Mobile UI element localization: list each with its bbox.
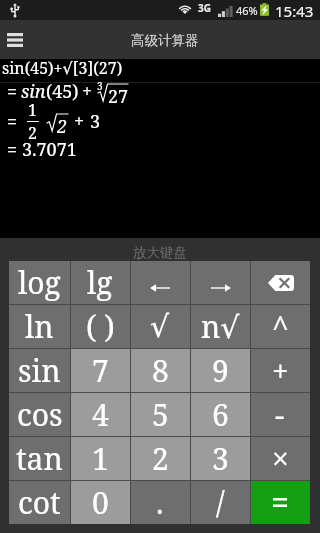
staticText: 27 xyxy=(108,84,129,108)
staticText: log xyxy=(18,262,61,303)
staticText: 1 xyxy=(92,438,109,479)
staticText: × xyxy=(272,438,289,479)
staticText: sin xyxy=(21,79,46,104)
staticText: 高级计算器 xyxy=(131,32,199,49)
staticText: sin(45)+√[3](27) xyxy=(2,57,123,79)
staticText: = xyxy=(7,137,18,162)
staticText: + xyxy=(272,350,289,391)
staticText: n√ xyxy=(201,306,240,347)
button[interactable]: 7 xyxy=(70,348,130,392)
staticText: 46% xyxy=(236,3,258,18)
staticText: 7 xyxy=(92,350,109,391)
button[interactable]: ^ xyxy=(250,304,310,348)
staticText: (45) xyxy=(46,79,79,104)
button[interactable]: log xyxy=(9,261,70,304)
staticText: . xyxy=(156,482,164,523)
staticText: + xyxy=(74,109,85,134)
staticText: 3 xyxy=(90,109,101,134)
button[interactable]: . xyxy=(130,480,190,524)
button[interactable]: cot xyxy=(9,480,70,524)
staticText: ln xyxy=(25,306,54,347)
button[interactable]: 1 xyxy=(70,436,130,480)
button[interactable]: - xyxy=(250,392,310,436)
button[interactable]: sin xyxy=(9,348,70,392)
staticText: 4 xyxy=(92,394,109,435)
staticText: - xyxy=(275,394,285,435)
staticText: = xyxy=(7,109,18,134)
button[interactable]: 5 xyxy=(130,392,190,436)
button[interactable]: 0 xyxy=(70,480,130,524)
staticText: 9 xyxy=(212,350,229,391)
staticText: 0 xyxy=(92,482,109,523)
staticText: cos xyxy=(17,394,63,435)
button[interactable]: Move cursor right xyxy=(190,261,250,304)
button[interactable]: 6 xyxy=(190,392,250,436)
staticText: 8 xyxy=(152,350,169,391)
staticText: 2 xyxy=(57,114,68,138)
staticText: 3 xyxy=(212,438,229,479)
button[interactable]: ln xyxy=(9,304,70,348)
staticText: lg xyxy=(87,262,113,303)
button[interactable]: 8 xyxy=(130,348,190,392)
button[interactable]: ( ) xyxy=(70,304,130,348)
staticText: 3.7071 xyxy=(22,137,77,162)
staticText: 6 xyxy=(212,394,229,435)
staticText: ( ) xyxy=(86,306,115,347)
button[interactable]: 放大键盘 xyxy=(0,238,320,261)
button[interactable]: 3 xyxy=(190,436,250,480)
staticText: 3 xyxy=(97,79,103,93)
staticText: sin xyxy=(18,350,61,391)
staticText: 2 xyxy=(152,438,169,479)
staticText: √ xyxy=(150,309,170,344)
button[interactable]: √ xyxy=(130,304,190,348)
button[interactable]: Backspace xyxy=(250,261,310,304)
staticText: 2 xyxy=(28,122,37,144)
staticText: 5 xyxy=(152,394,169,435)
staticText: 15:43 xyxy=(275,1,314,21)
button[interactable]: tan xyxy=(9,436,70,480)
staticText: = xyxy=(7,79,18,104)
button[interactable]: + xyxy=(250,348,310,392)
button[interactable]: 4 xyxy=(70,392,130,436)
button[interactable]: Move cursor left xyxy=(130,261,190,304)
button[interactable]: 2 xyxy=(130,436,190,480)
staticText: 放大键盘 xyxy=(133,244,187,261)
button[interactable]: × xyxy=(250,436,310,480)
staticText: tan xyxy=(16,438,63,479)
staticText: + xyxy=(82,79,93,104)
button[interactable]: Open navigation menu xyxy=(0,20,30,59)
staticText: cot xyxy=(18,482,61,523)
button[interactable]: 9 xyxy=(190,348,250,392)
staticText: 1 xyxy=(28,99,37,121)
button[interactable]: Equals xyxy=(250,480,310,524)
staticText: 3G xyxy=(198,1,211,15)
button[interactable]: lg xyxy=(70,261,130,304)
button[interactable]: / xyxy=(190,480,250,524)
button[interactable]: n√ xyxy=(190,304,250,348)
staticText: ^ xyxy=(272,306,289,347)
button[interactable]: cos xyxy=(9,392,70,436)
staticText: / xyxy=(216,482,225,523)
